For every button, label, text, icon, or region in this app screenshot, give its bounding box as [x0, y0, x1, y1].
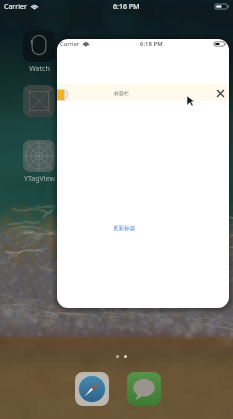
staticText: Watch	[29, 64, 50, 74]
staticText: 6:18 PM	[140, 40, 163, 48]
button[interactable]: App	[23, 85, 55, 117]
staticText: Carrier	[60, 40, 80, 48]
staticText: Carrier	[4, 2, 27, 12]
button[interactable]: 更新标题	[113, 225, 136, 232]
button[interactable]: Safari	[75, 372, 109, 406]
staticText: 6:16 PM	[113, 2, 140, 12]
staticText: YTagView	[24, 174, 55, 184]
button[interactable]: Close	[214, 87, 226, 99]
staticText: 标题栏	[114, 90, 129, 96]
button[interactable]: YTagView	[23, 140, 55, 172]
button[interactable]: 标题栏	[57, 84, 229, 101]
button[interactable]: Watch	[23, 30, 55, 62]
staticText: 更新标题	[113, 225, 136, 232]
button[interactable]: Messages	[127, 372, 161, 406]
